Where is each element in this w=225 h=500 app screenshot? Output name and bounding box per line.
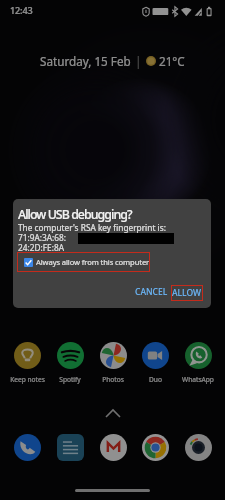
staticText: Always allow from this computer [36, 257, 150, 267]
button[interactable]: Phone [6, 434, 48, 461]
staticText: Photos [102, 375, 124, 384]
staticText: 21°C [159, 53, 185, 69]
button[interactable]: CANCEL [132, 283, 171, 300]
staticText: ALLOW [172, 287, 202, 299]
button[interactable]: Camera [177, 434, 219, 461]
button[interactable]: WhatsApp [177, 342, 219, 384]
button[interactable]: Gmail [92, 434, 134, 461]
button[interactable]: Duo [134, 342, 176, 384]
staticText: CANCEL [135, 286, 168, 298]
staticText: 12:43 [10, 4, 33, 17]
staticText: Spotify [59, 375, 81, 384]
button[interactable]: Photos [92, 342, 134, 384]
staticText: Allow USB debugging? [18, 206, 132, 223]
button[interactable]: Spotify [49, 342, 91, 384]
staticText: Duo [149, 375, 162, 384]
button[interactable]: Chrome [134, 434, 176, 461]
button[interactable]: Keep notes [6, 342, 48, 384]
staticText: | [135, 53, 142, 69]
staticText: 71:9A:3A:68: [18, 232, 66, 243]
staticText: The computer's RSA key fingerprint is: [18, 222, 166, 233]
button[interactable]: Always allow from this computer [17, 252, 150, 272]
staticText: Saturday, 15 Feb [40, 53, 131, 69]
button[interactable]: ALLOW [171, 285, 203, 301]
button[interactable]: Keep Notes [49, 434, 91, 461]
staticText: 24:2D:FE:8A [18, 242, 64, 253]
staticText: Keep notes [10, 375, 45, 384]
staticText: WhatsApp [182, 375, 214, 384]
